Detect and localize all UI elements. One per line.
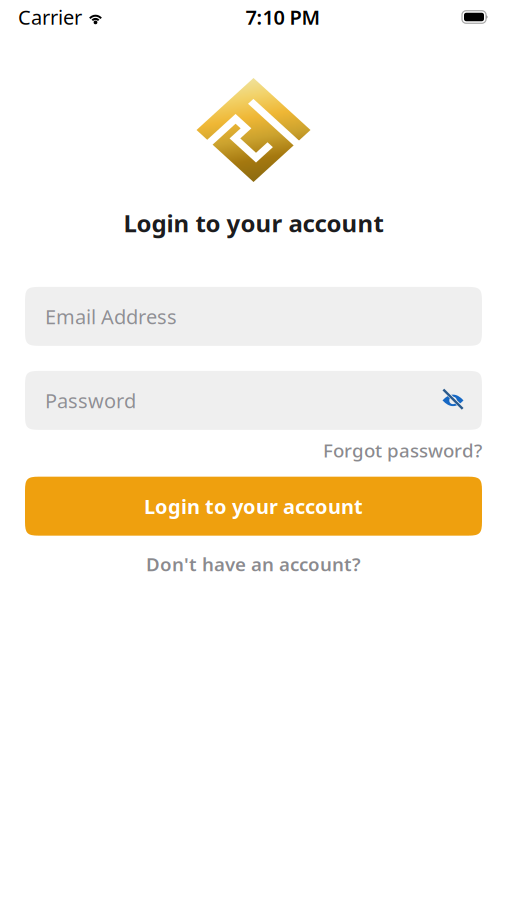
- button[interactable]: Forgot password?: [323, 438, 482, 463]
- staticText: Password: [45, 387, 136, 414]
- staticText: Don't have an account?: [146, 552, 361, 576]
- button[interactable]: Login to your account: [25, 477, 482, 536]
- staticText: Email Address: [45, 303, 177, 330]
- staticText: Carrier: [18, 4, 82, 30]
- button[interactable]: Don't have an account?: [146, 552, 361, 576]
- button[interactable]: Show password: [438, 385, 468, 415]
- staticText: Login to your account: [144, 493, 363, 519]
- staticText: Login to your account: [123, 207, 383, 239]
- staticText: Forgot password?: [323, 438, 482, 463]
- staticText: 7:10 PM: [245, 4, 320, 30]
